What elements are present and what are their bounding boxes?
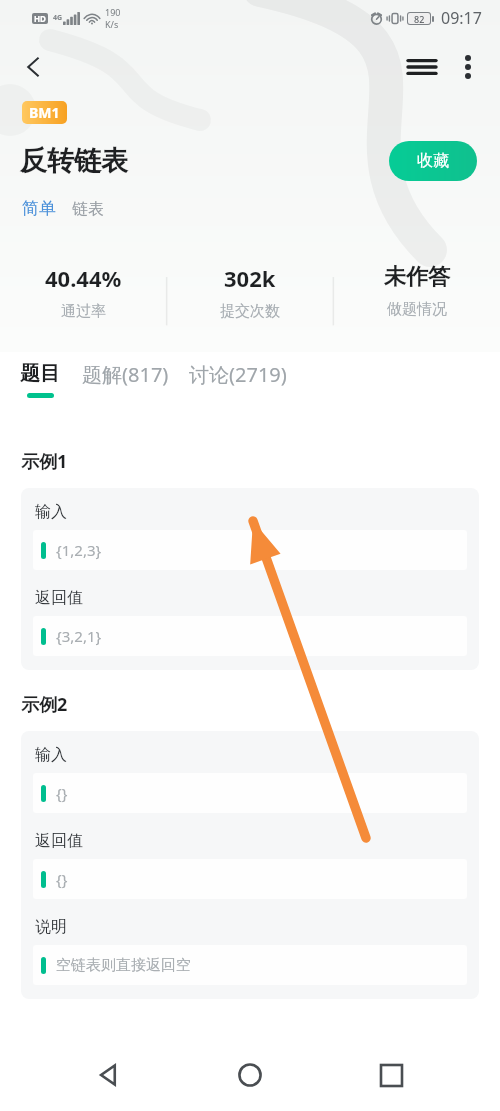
staticText: 输入 — [35, 745, 67, 765]
staticText: 示例1 — [21, 449, 68, 474]
button[interactable]: Recent apps — [359, 1043, 423, 1107]
staticText: BM1 — [29, 103, 60, 122]
button[interactable]: 302k — [166, 263, 333, 321]
staticText: 说明 — [35, 917, 67, 937]
staticText: 提交次数 — [220, 302, 280, 321]
button[interactable]: 题解(817) — [82, 361, 169, 388]
staticText: {1,2,3} — [56, 540, 102, 560]
staticText: HD — [34, 13, 46, 24]
staticText: 09:17 — [441, 7, 482, 29]
button[interactable]: Back — [77, 1043, 141, 1107]
staticText: 82 — [414, 13, 425, 24]
button[interactable]: Menu — [398, 43, 446, 91]
button[interactable]: 题目 — [20, 361, 60, 398]
staticText: 输入 — [35, 502, 67, 522]
staticText: 做题情况 — [387, 300, 447, 319]
staticText: {3,2,1} — [56, 626, 102, 646]
button[interactable]: Home — [218, 1043, 282, 1107]
button[interactable]: 收藏 — [389, 141, 477, 181]
button[interactable]: 40.44% — [0, 263, 166, 321]
staticText: 示例2 — [21, 692, 68, 717]
staticText: K/s — [105, 18, 119, 30]
staticText: 空链表则直接返回空 — [56, 956, 191, 975]
button[interactable]: 简单 — [22, 198, 56, 219]
staticText: {} — [56, 783, 68, 803]
button[interactable]: BM1 — [22, 101, 67, 124]
staticText: 收藏 — [417, 151, 449, 171]
staticText: {} — [56, 869, 68, 889]
staticText: 反转链表 — [20, 144, 128, 178]
staticText: 简单 — [22, 198, 56, 219]
button[interactable]: More options — [446, 45, 490, 89]
staticText: 4G — [53, 13, 63, 23]
staticText: 链表 — [72, 199, 104, 219]
staticText: 题解(817) — [82, 361, 169, 388]
staticText: 返回值 — [35, 831, 83, 851]
staticText: 讨论(2719) — [189, 361, 287, 388]
staticText: 40.44% — [45, 263, 122, 293]
button[interactable]: 未作答 — [333, 263, 500, 319]
staticText: 302k — [224, 263, 276, 293]
staticText: 190 — [105, 6, 121, 18]
button[interactable]: 讨论(2719) — [189, 361, 287, 388]
button[interactable]: Back — [8, 41, 60, 93]
staticText: 题目 — [20, 361, 60, 386]
staticText: 返回值 — [35, 588, 83, 608]
staticText: 未作答 — [384, 263, 450, 291]
button[interactable]: 链表 — [72, 199, 104, 219]
staticText: 通过率 — [61, 302, 106, 321]
